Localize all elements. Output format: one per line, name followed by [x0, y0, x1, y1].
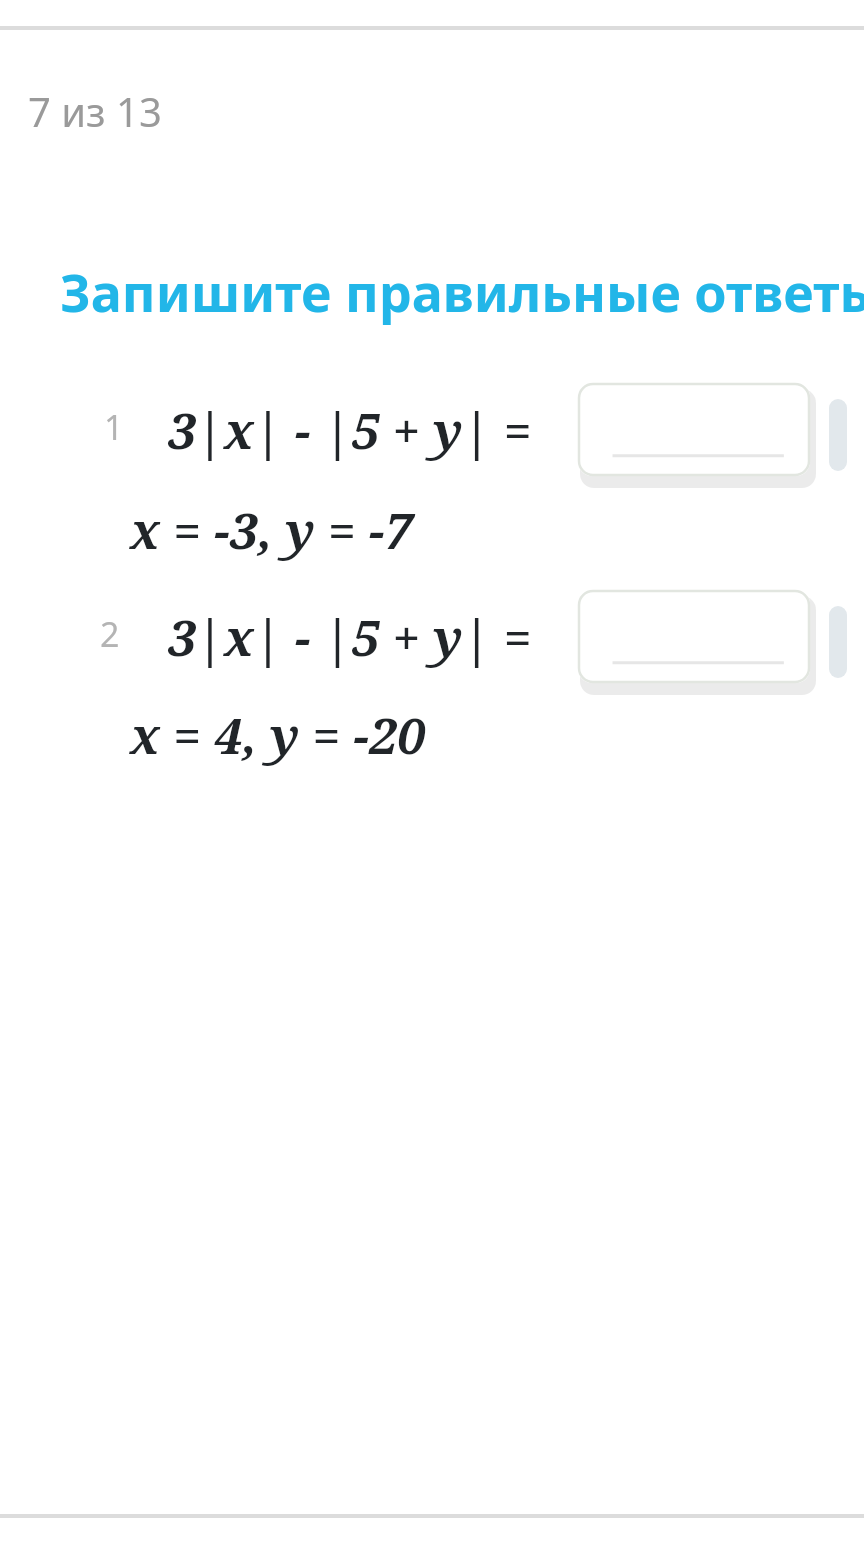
- staticText: x = −3, y = −7: [130, 496, 413, 564]
- staticText: Запишите правильные ответы: [60, 256, 864, 327]
- button[interactable]: Answer input: [578, 383, 816, 484]
- staticText: 3|x| − |5 + y| =: [168, 396, 532, 464]
- staticText: 1: [104, 404, 124, 450]
- button[interactable]: Answer status: [829, 399, 847, 471]
- staticText: 7 из 13: [28, 84, 162, 138]
- staticText: x = 4, y = −20: [130, 701, 425, 769]
- staticText: 3|x| − |5 + y| =: [168, 603, 532, 671]
- button[interactable]: Answer status: [829, 606, 847, 678]
- button[interactable]: Answer input: [578, 590, 816, 691]
- staticText: 2: [100, 611, 120, 657]
